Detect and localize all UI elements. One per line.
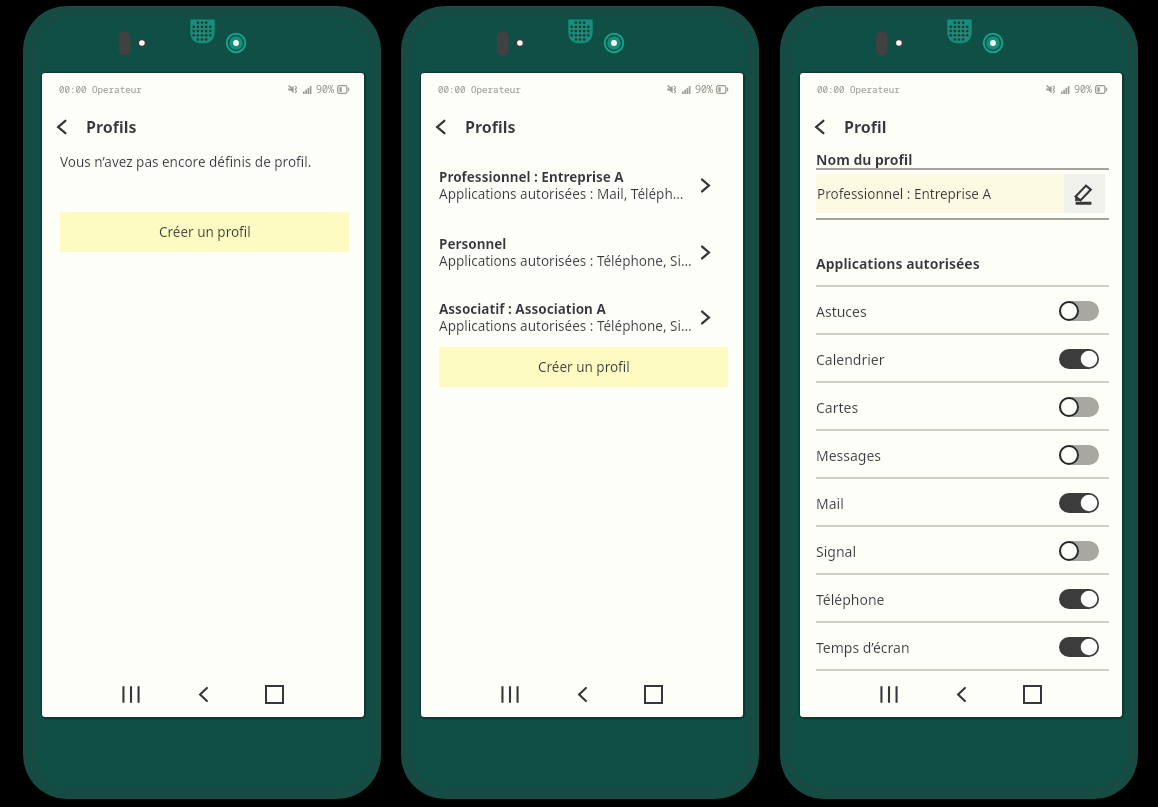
button[interactable]: Téléphone xyxy=(800,575,1122,623)
button[interactable]: Retour xyxy=(939,671,983,717)
staticText: Messages xyxy=(816,446,1059,465)
staticText: Mail xyxy=(816,494,1059,513)
button[interactable]: Signal xyxy=(800,527,1122,575)
staticText: Professionnel : Entreprise A xyxy=(817,185,992,203)
button[interactable]: Retour xyxy=(181,671,225,717)
button[interactable]: Applications récentes xyxy=(867,671,911,717)
staticText: Profils xyxy=(86,116,137,138)
button[interactable]: Mail xyxy=(800,479,1122,527)
staticText: Vous n’avez pas encore définis de profil… xyxy=(60,153,312,171)
staticText: Profil xyxy=(844,116,887,138)
staticText: Cartes xyxy=(816,398,1059,417)
button[interactable]: Calendrier xyxy=(800,335,1122,383)
staticText: Profils xyxy=(465,116,516,138)
button[interactable]: Retour xyxy=(44,109,80,145)
button[interactable]: Personnel xyxy=(421,235,743,269)
staticText: Calendrier xyxy=(816,350,1059,369)
staticText: Nom du profil xyxy=(816,150,913,169)
staticText: 00:00 Operateur xyxy=(59,83,142,96)
staticText: Professionnel : Entreprise A xyxy=(439,168,624,186)
button[interactable]: Astuces xyxy=(800,287,1122,335)
staticText: Applications autorisées : Mail, Téléph… xyxy=(439,185,709,203)
staticText: Créer un profil xyxy=(159,223,251,241)
staticText: 90% xyxy=(695,82,713,96)
button[interactable]: Messages xyxy=(800,431,1122,479)
button[interactable]: Associatif : Association A xyxy=(421,300,743,334)
button[interactable]: Créer un profil xyxy=(439,347,728,387)
staticText: 90% xyxy=(316,82,334,96)
button[interactable]: Retour xyxy=(802,109,838,145)
staticText: Créer un profil xyxy=(538,358,630,376)
staticText: Associatif : Association A xyxy=(439,300,606,318)
staticText: 90% xyxy=(1074,82,1092,96)
button[interactable]: Accueil xyxy=(631,671,675,717)
staticText: 00:00 Operateur xyxy=(438,83,521,96)
staticText: Astuces xyxy=(816,302,1059,321)
staticText: Applications autorisées : Téléphone, Si… xyxy=(439,252,709,270)
staticText: Téléphone xyxy=(816,590,1059,609)
button[interactable]: Temps d’écran xyxy=(800,623,1122,671)
button[interactable]: Retour xyxy=(560,671,604,717)
staticText: 00:00 Operateur xyxy=(817,83,900,96)
staticText: Temps d’écran xyxy=(816,638,1059,657)
button[interactable]: Retour xyxy=(423,109,459,145)
staticText: Applications autorisées xyxy=(816,254,980,273)
button[interactable]: Accueil xyxy=(252,671,296,717)
button[interactable]: Modifier xyxy=(1064,174,1105,213)
button[interactable]: Professionnel : Entreprise A xyxy=(421,168,743,202)
button[interactable]: Créer un profil xyxy=(60,212,349,252)
button[interactable]: Applications récentes xyxy=(109,671,153,717)
staticText: Signal xyxy=(816,542,1059,561)
staticText: Applications autorisées : Téléphone, Si… xyxy=(439,317,709,335)
button[interactable]: Cartes xyxy=(800,383,1122,431)
staticText: Personnel xyxy=(439,235,507,253)
button[interactable]: Applications récentes xyxy=(488,671,532,717)
button[interactable]: Accueil xyxy=(1010,671,1054,717)
